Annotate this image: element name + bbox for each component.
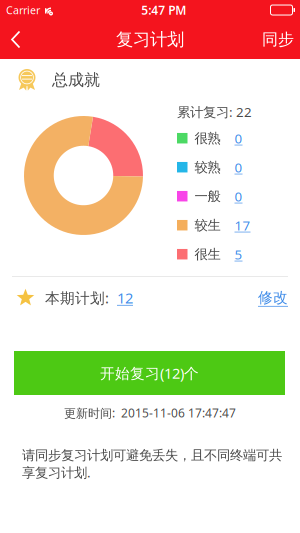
staticText: 0	[234, 129, 242, 147]
staticText: 修改	[258, 289, 288, 307]
staticText: 5	[234, 245, 242, 263]
staticText: 0	[234, 158, 242, 176]
button[interactable]: 0	[227, 129, 252, 147]
staticText: Carrier	[6, 3, 40, 17]
button[interactable]: 同步	[248, 21, 300, 58]
staticText: 开始复习(12)个	[100, 363, 199, 383]
staticText: 一般	[194, 188, 220, 204]
staticText: 12	[117, 288, 133, 307]
staticText: 复习计划	[116, 29, 184, 50]
staticText: 17	[234, 216, 250, 234]
staticText: 很熟	[194, 130, 220, 146]
staticText: 总成就	[52, 70, 100, 90]
button[interactable]: 12	[109, 288, 133, 307]
staticText: 很生	[194, 246, 220, 262]
staticText: 更新时间: 2015-11-06 17:47:47	[64, 405, 236, 421]
button[interactable]: 开始复习(12)个	[14, 351, 285, 395]
button[interactable]: 修改	[258, 289, 288, 307]
staticText: 较生	[194, 217, 220, 233]
button[interactable]: 0	[227, 187, 252, 205]
staticText: 0	[234, 187, 242, 205]
staticText: 同步	[262, 30, 294, 49]
button[interactable]: 5	[227, 245, 252, 263]
staticText: 累计复习: 22	[177, 103, 252, 121]
button[interactable]: Back	[0, 20, 38, 58]
staticText: 较熟	[194, 159, 220, 175]
button[interactable]: 0	[227, 158, 252, 176]
staticText: 请同步复习计划可避免丢失，且不同终端可共享复习计划.	[22, 447, 282, 481]
staticText: 本期计划:	[45, 288, 109, 307]
button[interactable]: 17	[227, 216, 252, 234]
staticText: 5:47 PM	[141, 2, 186, 18]
